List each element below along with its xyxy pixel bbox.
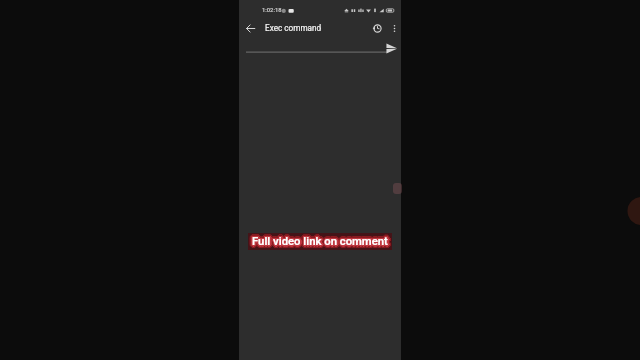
button[interactable]: More options (387, 21, 401, 35)
staticText: Full video link on comment (251, 238, 388, 251)
staticText: Exec command (265, 23, 322, 33)
staticText: Full video link on comment (251, 234, 388, 247)
staticText: Full video link on comment (249, 234, 386, 247)
staticText: Full video link on comment (254, 235, 391, 248)
staticText: Full video link on comment (254, 233, 391, 246)
staticText: Full video link on comment (251, 232, 388, 245)
button[interactable]: Send (384, 41, 398, 55)
staticText: Full video link on comment (253, 232, 390, 245)
staticText: Full video link on comment (253, 238, 390, 251)
staticText: Full video link on comment (251, 236, 388, 249)
staticText: Full video link on comment (252, 237, 389, 250)
staticText: Full video link on comment (251, 234, 388, 247)
staticText: Full video link on comment (249, 236, 386, 249)
staticText: Full video link on comment (250, 233, 387, 246)
staticText: Full video link on comment (253, 234, 390, 247)
staticText: Full video link on comment (252, 234, 389, 247)
staticText: Full video link on comment (253, 234, 390, 247)
staticText: Full video link on comment (251, 235, 388, 248)
button[interactable]: History (369, 20, 385, 36)
staticText: Full video link on comment (255, 234, 392, 247)
staticText: Full video link on comment (253, 234, 390, 247)
staticText: Full video link on comment (254, 233, 391, 246)
staticText: 1:02:18 (262, 7, 282, 14)
staticText: Full video link on comment (249, 235, 386, 248)
staticText: Full video link on comment (253, 236, 390, 249)
staticText: Full video link on comment (252, 232, 389, 245)
staticText: Full video link on comment (251, 234, 388, 247)
staticText: Full video link on comment (253, 236, 390, 249)
staticText: Full video link on comment (254, 237, 391, 250)
button[interactable]: Back (240, 18, 260, 38)
staticText: Full video link on comment (250, 233, 387, 246)
button[interactable]: Exec command (265, 23, 322, 33)
button[interactable]: Command input (246, 40, 387, 54)
staticText: Full video link on comment (255, 235, 392, 248)
staticText: Full video link on comment (250, 237, 387, 250)
staticText: Full video link on comment (255, 236, 392, 249)
staticText: Full video link on comment (252, 235, 388, 248)
staticText: Full video link on comment (254, 237, 391, 250)
staticText: Full video link on comment (250, 237, 387, 250)
staticText: Full video link on comment (253, 236, 390, 249)
staticText: Full video link on comment (252, 238, 389, 251)
staticText: Full video link on comment (251, 236, 388, 249)
staticText: Full video link on comment (251, 236, 388, 249)
